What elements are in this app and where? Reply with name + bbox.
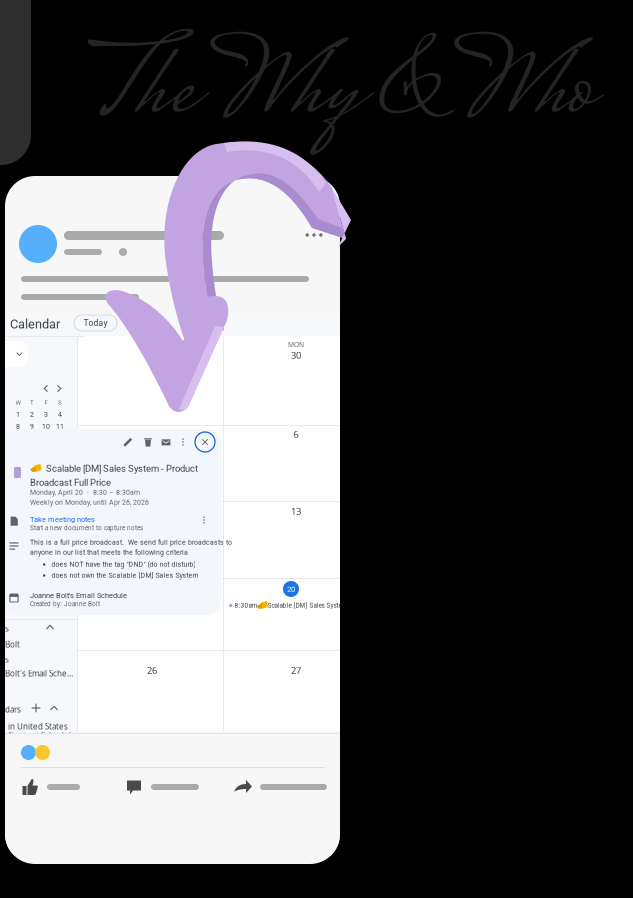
button[interactable]: Share	[5, 734, 340, 856]
button[interactable]: Today	[5, 313, 340, 734]
button[interactable]: Note options	[5, 429, 221, 615]
staticText: dars	[5, 704, 21, 715]
staticText: Bolt	[5, 639, 20, 650]
staticText: 30	[291, 349, 301, 361]
button[interactable]: Close	[5, 429, 221, 615]
staticText: 3	[44, 410, 48, 418]
staticText: Calendar	[10, 316, 60, 331]
button[interactable]: Comment	[5, 734, 340, 856]
staticText: anyone in our list that meets the follow…	[30, 548, 188, 557]
staticText: MON	[288, 340, 304, 349]
staticText: in United States	[8, 721, 68, 732]
staticText: 10	[42, 422, 50, 430]
staticText: s	[5, 623, 9, 634]
staticText: W	[15, 399, 20, 406]
button[interactable]: Take meeting notes	[5, 429, 221, 615]
staticText: Take meeting notes	[30, 515, 95, 524]
staticText: 1	[16, 410, 20, 418]
staticText: The Why & Who	[92, 14, 593, 177]
staticText: 2	[30, 410, 34, 418]
staticText: Broadcast Full Price	[30, 477, 111, 488]
button[interactable]: Edit event	[5, 429, 221, 615]
staticText: Bolt's Email Sche…	[5, 668, 73, 679]
staticText: 6	[293, 428, 298, 440]
staticText: does NOT have the tag "DND" (do not dist…	[51, 560, 195, 569]
staticText: 9	[30, 422, 34, 430]
staticText: Content Schedule	[8, 730, 76, 741]
staticText: Weekly on Monday, until Apr 26, 2026	[30, 498, 149, 507]
staticText: Scalable [DM] Sales System - P	[267, 602, 357, 609]
staticText: 8:30am	[234, 602, 257, 609]
button[interactable]: Previous month	[5, 313, 340, 734]
staticText: does not own the Scalable [DM] Sales Sys…	[51, 571, 198, 580]
staticText: 27	[291, 664, 301, 676]
button[interactable]: Like	[5, 734, 340, 856]
staticText: Monday, April 20 · 8:30 – 8:30am	[30, 488, 140, 497]
staticText: Start a new document to capture notes	[30, 524, 143, 532]
staticText: 11	[56, 422, 64, 430]
button[interactable]: More actions	[5, 429, 221, 615]
button[interactable]: Next month	[5, 313, 340, 734]
button[interactable]: Delete event	[5, 429, 221, 615]
staticText: Joanne Bolt's Email Schedule	[30, 591, 127, 600]
staticText: 4	[58, 410, 62, 418]
staticText: 20	[287, 584, 295, 594]
staticText: Created by: Joanne Bolt	[30, 600, 100, 608]
staticText: F	[44, 399, 47, 406]
staticText: This is a full price broadcast. We send …	[30, 538, 232, 547]
staticText: Today	[83, 318, 107, 328]
staticText: S	[58, 399, 62, 406]
staticText: 26	[147, 664, 157, 676]
staticText: 8	[16, 422, 20, 430]
staticText: T	[30, 399, 34, 406]
staticText: 13	[291, 505, 301, 517]
button[interactable]: Email guests	[5, 429, 221, 615]
button[interactable]: More options	[5, 176, 340, 864]
staticText: s	[5, 654, 9, 665]
staticText: Scalable [DM] Sales System - Product	[46, 463, 198, 474]
